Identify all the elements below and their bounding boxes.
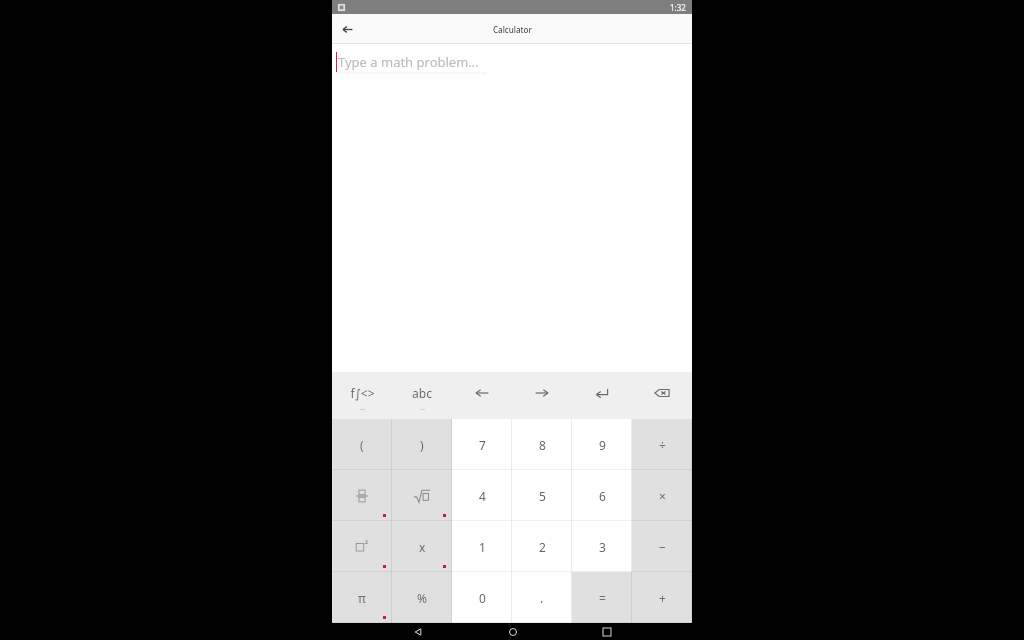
staticText: 3	[599, 539, 606, 555]
staticText: (	[360, 437, 364, 453]
staticText: ×	[659, 488, 666, 504]
button[interactable]: +	[632, 572, 692, 623]
button[interactable]: Move cursor right	[512, 372, 572, 419]
button[interactable]: −	[632, 521, 692, 572]
staticText: 6	[599, 488, 606, 504]
button[interactable]: Square root	[392, 470, 452, 521]
button[interactable]: 8	[512, 419, 572, 470]
staticText: .	[540, 590, 544, 606]
button[interactable]: ×	[632, 470, 692, 521]
button[interactable]: 9	[572, 419, 632, 470]
staticText: Type a math problem…	[338, 53, 479, 71]
staticText: =	[599, 590, 606, 606]
button[interactable]: Backspace	[632, 372, 692, 419]
button[interactable]: 1	[452, 521, 512, 572]
staticText: 1	[479, 539, 486, 555]
button[interactable]: Enter	[572, 372, 632, 419]
staticText: 0	[479, 590, 486, 606]
staticText: 4	[479, 488, 486, 504]
button[interactable]: x	[392, 521, 452, 572]
staticText: 8	[539, 437, 546, 453]
staticText: f∫<>	[350, 385, 375, 401]
button[interactable]: Back	[332, 14, 362, 44]
button[interactable]: 5	[512, 470, 572, 521]
staticText: 5	[539, 488, 546, 504]
button[interactable]: ÷	[632, 419, 692, 470]
staticText: 2	[539, 539, 546, 555]
button[interactable]: Square	[332, 521, 392, 572]
button[interactable]: 7	[452, 419, 512, 470]
staticText: ÷	[659, 437, 666, 453]
button[interactable]: f∫<>	[332, 372, 392, 419]
button[interactable]: )	[392, 419, 452, 470]
button[interactable]: 4	[452, 470, 512, 521]
staticText: x	[419, 539, 426, 555]
button[interactable]: Move cursor left	[452, 372, 512, 419]
button[interactable]: Home	[504, 623, 521, 640]
staticText: 7	[479, 437, 486, 453]
staticText: π	[358, 590, 366, 606]
button[interactable]: 2	[512, 521, 572, 572]
button[interactable]: =	[572, 572, 632, 623]
staticText: %	[417, 590, 427, 606]
button[interactable]: (	[332, 419, 392, 470]
button[interactable]: Recents	[598, 623, 615, 640]
staticText: 9	[599, 437, 606, 453]
button[interactable]: π	[332, 572, 392, 623]
button[interactable]: 3	[572, 521, 632, 572]
staticText: −	[659, 539, 666, 555]
staticText: 1:32	[670, 2, 686, 13]
staticText: abc	[412, 385, 432, 401]
button[interactable]: .	[512, 572, 572, 623]
button[interactable]: 6	[572, 470, 632, 521]
staticText: Calculator	[493, 24, 532, 35]
staticText: )	[420, 437, 424, 453]
button[interactable]: Fraction	[332, 470, 392, 521]
button[interactable]: abc	[392, 372, 452, 419]
button[interactable]: Back	[409, 623, 426, 640]
staticText: +	[659, 590, 666, 606]
button[interactable]: %	[392, 572, 452, 623]
button[interactable]: 0	[452, 572, 512, 623]
